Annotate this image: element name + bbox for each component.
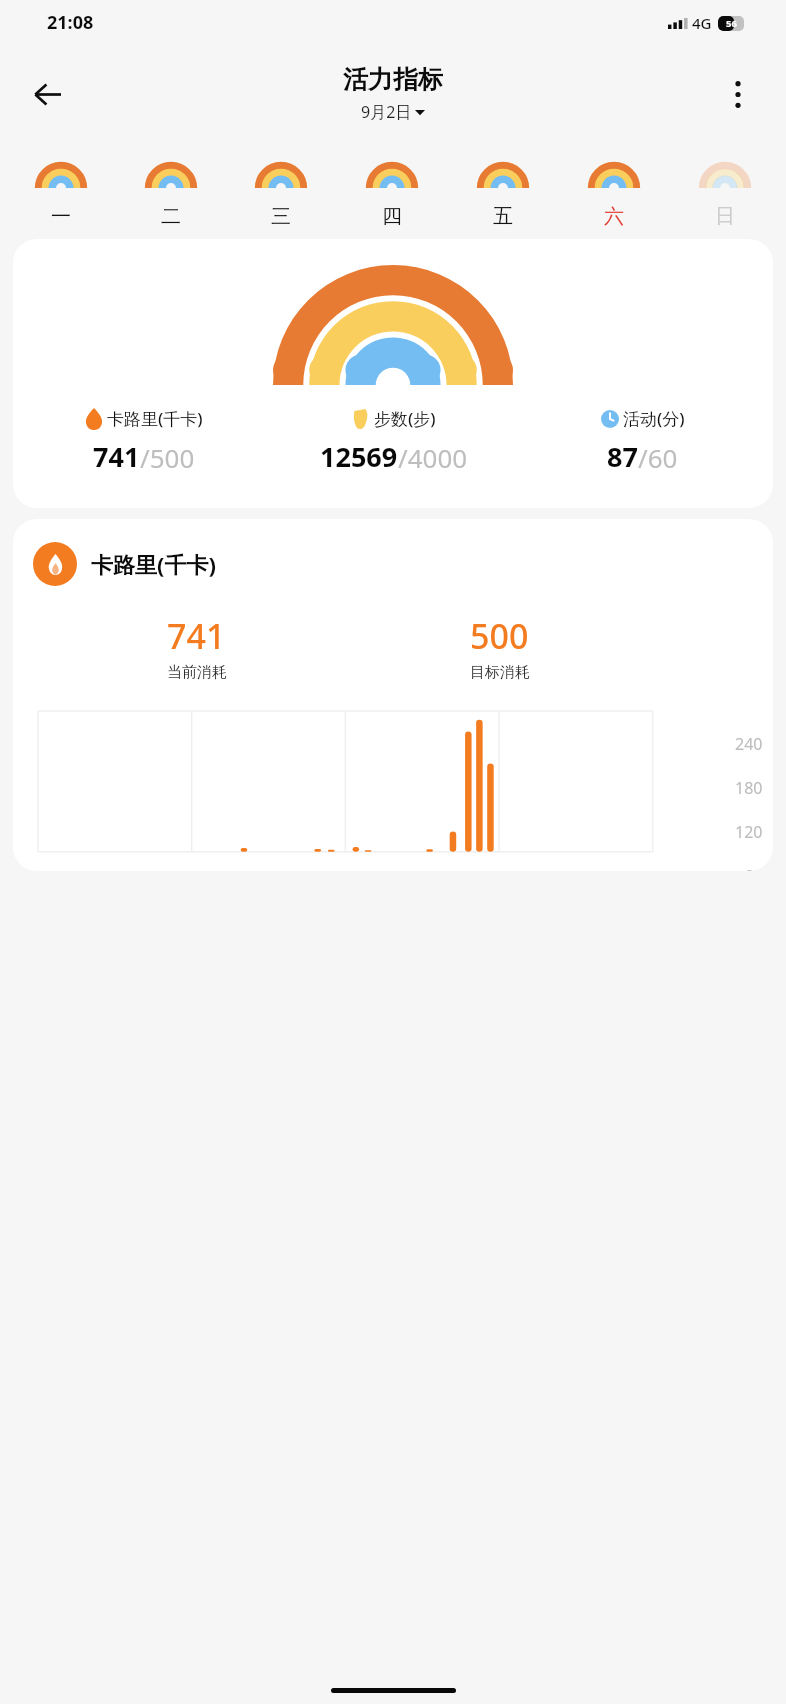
staticText: 56 <box>726 17 737 30</box>
button[interactable]: 活动(分) <box>518 407 767 475</box>
staticText: 步数(步) <box>374 407 436 430</box>
staticText: 741 <box>93 438 140 475</box>
staticText: 180 <box>735 777 763 799</box>
staticText: 日 <box>715 204 735 229</box>
staticText: 四 <box>382 204 402 229</box>
button[interactable]: 六 <box>558 142 669 229</box>
button[interactable]: 四 <box>336 142 447 229</box>
staticText: 87 <box>607 438 638 475</box>
staticText: 活力指标 <box>343 64 443 95</box>
staticText: 活动(分) <box>623 407 685 430</box>
staticText: 21:08 <box>47 10 94 35</box>
staticText: 卡路里(千卡) <box>107 407 203 430</box>
staticText: /500 <box>140 440 195 475</box>
staticText: 六 <box>604 204 624 229</box>
staticText: /60 <box>638 440 678 475</box>
staticText: /4000 <box>398 440 468 475</box>
staticText: 五 <box>493 204 513 229</box>
button[interactable]: 五 <box>447 142 558 229</box>
button[interactable]: 卡路里(千卡) <box>13 239 773 508</box>
staticText: 三 <box>271 204 291 229</box>
staticText: 741 <box>167 613 226 659</box>
button[interactable]: 步数(步) <box>269 407 518 475</box>
button[interactable]: 一 <box>6 142 116 229</box>
button[interactable]: 二 <box>116 142 226 229</box>
button[interactable]: 日 <box>669 142 780 229</box>
staticText: 60 <box>744 865 763 871</box>
staticText: 240 <box>735 733 763 755</box>
button[interactable]: 卡路里(千卡) <box>19 407 269 475</box>
staticText: 当前消耗 <box>167 663 227 682</box>
button[interactable]: More options <box>714 70 762 118</box>
staticText: 12569 <box>320 438 398 475</box>
staticText: 500 <box>470 613 529 659</box>
button[interactable]: Back <box>20 67 74 121</box>
staticText: 目标消耗 <box>470 663 530 682</box>
staticText: 4G <box>692 13 712 33</box>
button[interactable]: 9月2日 <box>361 101 425 123</box>
staticText: 一 <box>51 204 71 229</box>
staticText: 120 <box>735 821 763 843</box>
staticText: 卡路里(千卡) <box>91 549 216 579</box>
button[interactable]: 卡路里(千卡) <box>13 519 773 871</box>
staticText: 9月2日 <box>361 101 412 123</box>
staticText: 二 <box>161 204 181 229</box>
button[interactable]: 三 <box>226 142 336 229</box>
